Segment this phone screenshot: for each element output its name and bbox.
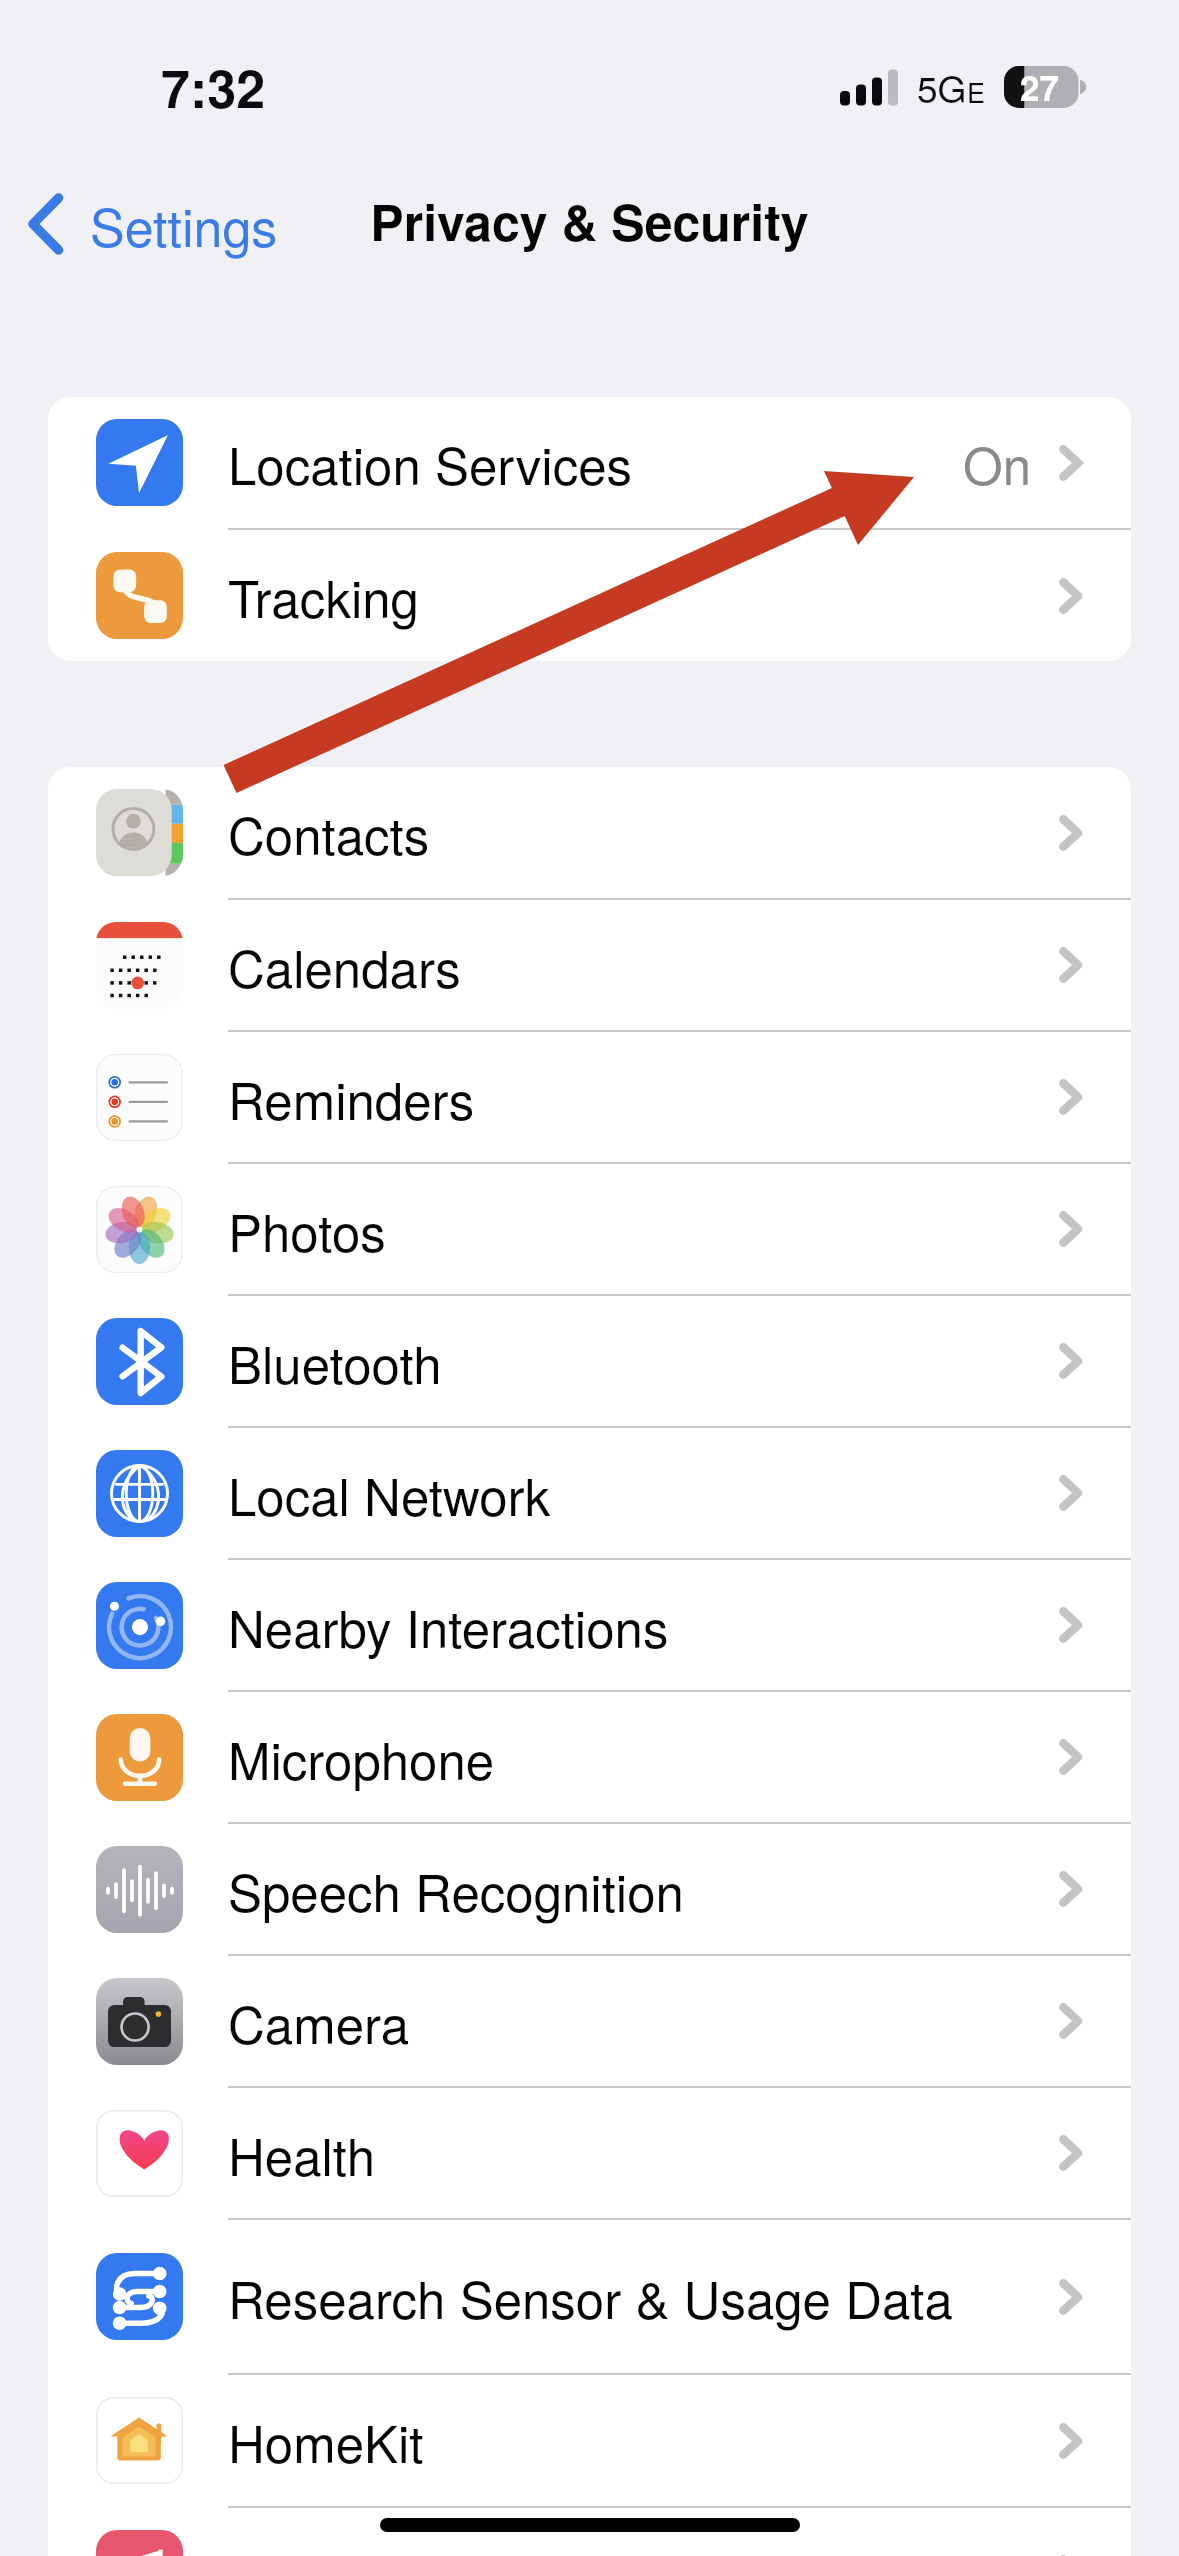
- button[interactable]: Media & Apple Music: [48, 2508, 1131, 2556]
- staticText: Privacy & Security: [0, 185, 1179, 257]
- staticText: 7:32: [161, 49, 266, 123]
- button[interactable]: Reminders: [48, 1032, 1131, 1162]
- staticText: Contacts: [228, 796, 430, 869]
- button[interactable]: HomeKit: [48, 2375, 1131, 2506]
- staticText: Tracking: [228, 559, 419, 632]
- staticText: Location Services: [228, 426, 633, 499]
- staticText: Settings: [90, 187, 278, 261]
- other: Back to Settings: [22, 193, 66, 255]
- staticText: Microphone: [228, 1721, 495, 1794]
- button[interactable]: Back to Settings: [22, 187, 278, 261]
- button[interactable]: Nearby Interactions: [48, 1560, 1131, 1690]
- staticText: Nearby Interactions: [228, 1589, 669, 1662]
- button[interactable]: Health: [48, 2088, 1131, 2218]
- staticText: Camera: [228, 1985, 410, 2058]
- button[interactable]: Photos: [48, 1164, 1131, 1294]
- button[interactable]: Bluetooth: [48, 1296, 1131, 1426]
- button[interactable]: Calendars: [48, 900, 1131, 1030]
- staticText: HomeKit: [228, 2404, 424, 2477]
- staticText: Reminders: [228, 1061, 475, 1134]
- staticText: 5G: [917, 61, 967, 114]
- button[interactable]: Research Sensor & Usage Data: [48, 2220, 1131, 2373]
- button[interactable]: Microphone: [48, 1692, 1131, 1822]
- staticText: Bluetooth: [228, 1325, 442, 1398]
- staticText: Calendars: [228, 929, 461, 1002]
- staticText: On: [963, 426, 1032, 499]
- button[interactable]: Speech Recognition: [48, 1824, 1131, 1954]
- button[interactable]: Camera: [48, 1956, 1131, 2086]
- staticText: E: [967, 72, 986, 111]
- staticText: Local Network: [228, 1457, 551, 1530]
- staticText: Health: [228, 2117, 376, 2190]
- staticText: Research Sensor & Usage Data: [228, 2260, 953, 2333]
- button[interactable]: Contacts: [48, 767, 1131, 898]
- staticText: Speech Recognition: [228, 1853, 684, 1926]
- button[interactable]: Tracking: [48, 530, 1131, 661]
- staticText: Photos: [228, 1193, 386, 1266]
- button[interactable]: Location Services: [48, 397, 1131, 528]
- button[interactable]: Local Network: [48, 1428, 1131, 1558]
- staticText: 27: [1020, 62, 1059, 112]
